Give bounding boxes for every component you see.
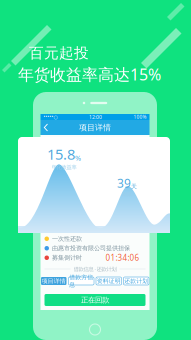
staticText: •••••○ <box>43 114 57 120</box>
button[interactable]: 还款计划 <box>123 277 149 285</box>
staticText: 项目详情 <box>42 277 66 285</box>
staticText: 天 <box>131 183 137 190</box>
staticText: 借款方信息 <box>69 274 93 288</box>
staticText: 由惠市投资有限公司提供担保 <box>52 244 130 252</box>
staticText: 15.8 <box>47 144 75 164</box>
button[interactable]: 借款方信息 <box>68 277 94 285</box>
staticText: 39 <box>117 175 131 191</box>
staticText: 项目详情 <box>79 122 111 133</box>
staticText: 期限 <box>122 191 132 197</box>
staticText: 一次性还款 <box>52 235 82 243</box>
button[interactable]: 项目详情 <box>41 277 66 285</box>
staticText: 百元起投 <box>29 44 89 62</box>
button[interactable]: 资料证明 <box>96 277 121 285</box>
staticText: 正在回款 <box>81 295 109 305</box>
staticText: 12:00 <box>89 113 102 120</box>
staticText: 年化收益率 <box>51 164 76 171</box>
staticText: 资料证明 <box>97 277 121 285</box>
button[interactable]: Back <box>40 120 53 135</box>
staticText: 01:34:06 <box>105 252 139 263</box>
staticText: 还款计划 <box>124 277 148 285</box>
staticText: 募集倒计时 <box>52 254 82 262</box>
staticText: 年货收益率高达15% <box>18 63 161 85</box>
staticText: 借款信息 · 还款计划 <box>73 265 116 273</box>
button[interactable]: 正在回款 <box>44 294 145 306</box>
staticText: 100% <box>133 114 146 120</box>
staticText: % <box>75 153 81 163</box>
